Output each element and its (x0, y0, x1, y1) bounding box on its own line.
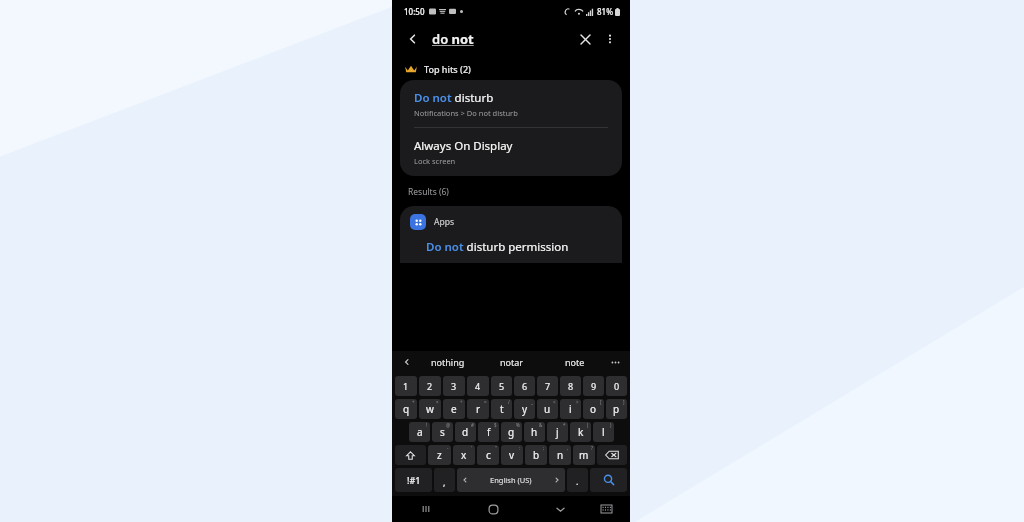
staticText: nothing (431, 356, 465, 368)
button[interactable]: English (US) (457, 468, 565, 492)
staticText: h (531, 425, 538, 439)
staticText: 81% (597, 6, 613, 17)
button[interactable]: s (432, 422, 453, 442)
button[interactable]: Do not disturb (400, 80, 622, 127)
button[interactable]: 4 (467, 376, 489, 396)
staticText: # (471, 422, 474, 428)
button[interactable]: k (570, 422, 591, 442)
button[interactable]: f (478, 422, 499, 442)
button[interactable]: note (543, 351, 606, 373)
button[interactable]: u (537, 399, 558, 419)
staticText: = (484, 399, 487, 405)
staticText: f (487, 425, 491, 439)
button[interactable]: w (419, 399, 441, 419)
button[interactable]: Always On Display (400, 128, 622, 176)
button[interactable]: 7 (537, 376, 558, 396)
staticText: i (569, 402, 572, 416)
button[interactable]: 8 (560, 376, 581, 396)
button[interactable]: 0 (606, 376, 627, 396)
button[interactable]: i (560, 399, 581, 419)
button[interactable]: More suggestions (606, 353, 624, 371)
button[interactable]: More options (598, 27, 622, 51)
button[interactable]: nothing (416, 351, 480, 373)
staticText: v (509, 448, 515, 462)
staticText: c (486, 448, 491, 462)
staticText: Notifications > Do not disturb (414, 108, 518, 118)
staticText: ÷ (460, 399, 463, 405)
button[interactable]: , (434, 468, 455, 492)
staticText: / (508, 399, 510, 405)
button[interactable]: 3 (443, 376, 465, 396)
button[interactable]: . (567, 468, 588, 492)
button[interactable]: Do not disturb permission (400, 236, 622, 263)
staticText: 0 (614, 380, 620, 392)
staticText: % (516, 422, 520, 428)
staticText: Results (6) (408, 186, 449, 198)
staticText: 2 (427, 380, 433, 392)
staticText: q (403, 402, 410, 416)
button[interactable]: do not (432, 30, 572, 48)
button[interactable]: j (547, 422, 568, 442)
staticText: ] (623, 399, 625, 405)
staticText: r (476, 402, 481, 416)
button[interactable]: Hide keyboard (549, 498, 571, 520)
staticText: English (US) (490, 475, 532, 485)
button[interactable]: v (501, 445, 523, 465)
button[interactable]: Search (590, 468, 627, 492)
button[interactable]: y (514, 399, 535, 419)
button[interactable]: e (443, 399, 465, 419)
staticText: s (440, 425, 445, 439)
button[interactable]: 2 (419, 376, 441, 396)
button[interactable]: r (467, 399, 489, 419)
staticText: g (508, 425, 515, 439)
button[interactable]: Clear search (572, 26, 598, 52)
staticText: note (565, 356, 585, 368)
button[interactable]: h (524, 422, 545, 442)
button[interactable]: p (606, 399, 627, 419)
button[interactable]: n (549, 445, 571, 465)
button[interactable]: Change keyboard (595, 498, 617, 520)
staticText: 5 (499, 380, 505, 392)
button[interactable]: q (395, 399, 417, 419)
button[interactable]: o (583, 399, 604, 419)
button[interactable]: Home (481, 497, 505, 521)
button[interactable]: notar (480, 351, 543, 373)
staticText: , (443, 476, 446, 488)
staticText: Lock screen (414, 156, 456, 166)
button[interactable]: Shift (395, 445, 426, 465)
staticText: 7 (545, 380, 551, 392)
staticText: y (522, 402, 528, 416)
staticText: < (553, 399, 556, 405)
staticText: " (495, 445, 497, 451)
button[interactable]: Back (400, 26, 426, 52)
button[interactable]: m (573, 445, 595, 465)
staticText: n (557, 448, 564, 462)
button[interactable]: Recent apps (415, 498, 437, 520)
button[interactable]: Backspace (597, 445, 627, 465)
staticText: 3 (451, 380, 457, 392)
button[interactable]: x (453, 445, 475, 465)
button[interactable]: a (409, 422, 430, 442)
button[interactable]: 1 (395, 376, 417, 396)
staticText: Apps (434, 216, 454, 228)
staticText: × (436, 399, 439, 405)
button[interactable]: l (593, 422, 614, 442)
button[interactable]: !#1 (395, 468, 432, 492)
staticText: ; (543, 445, 545, 451)
button[interactable]: 9 (583, 376, 604, 396)
button[interactable]: 5 (491, 376, 512, 396)
button[interactable]: Previous suggestions (398, 353, 416, 371)
staticText: o (590, 402, 597, 416)
button[interactable]: c (477, 445, 499, 465)
button[interactable]: Apps (400, 206, 622, 236)
staticText: Always On Display (414, 138, 513, 154)
button[interactable]: b (525, 445, 547, 465)
button[interactable]: t (491, 399, 512, 419)
staticText: j (556, 425, 559, 439)
button[interactable]: g (501, 422, 522, 442)
staticText: x (461, 448, 467, 462)
button[interactable]: z (428, 445, 451, 465)
staticText: @ (446, 422, 451, 428)
button[interactable]: 6 (514, 376, 535, 396)
button[interactable]: d (455, 422, 476, 442)
